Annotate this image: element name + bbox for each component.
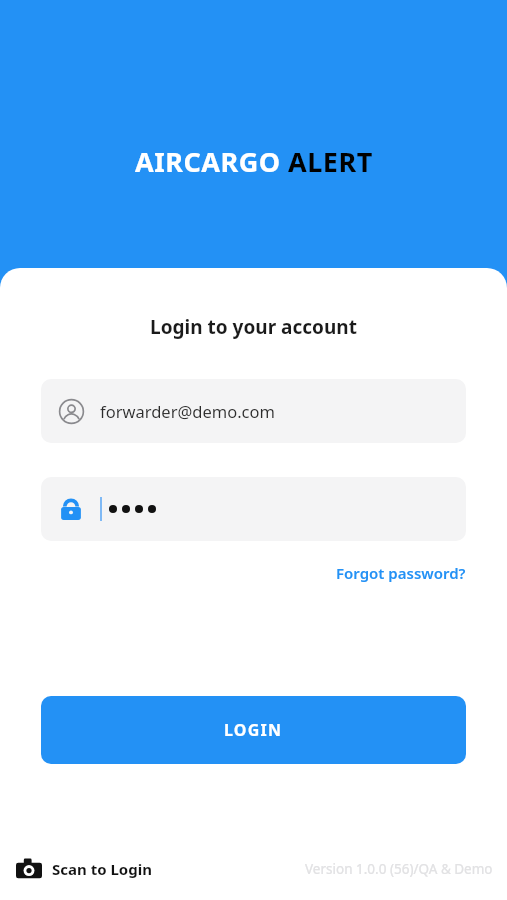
staticText: forwarder@demo.com — [100, 400, 275, 422]
staticText: Login to your account — [0, 314, 507, 340]
staticText: AIRCARGO ALERT — [135, 143, 373, 180]
other: Scan to Login — [16, 856, 42, 882]
button[interactable] — [41, 477, 466, 541]
staticText: Version 1.0.0 (56)/QA & Demo — [305, 860, 493, 878]
button[interactable]: forwarder@demo.com — [41, 379, 466, 443]
button[interactable]: LOGIN — [41, 696, 466, 764]
button[interactable]: Forgot password? — [336, 559, 466, 587]
staticText: LOGIN — [224, 719, 283, 741]
button[interactable]: Scan to Login — [14, 852, 154, 886]
staticText: Scan to Login — [52, 859, 152, 879]
staticText: Forgot password? — [336, 563, 466, 583]
